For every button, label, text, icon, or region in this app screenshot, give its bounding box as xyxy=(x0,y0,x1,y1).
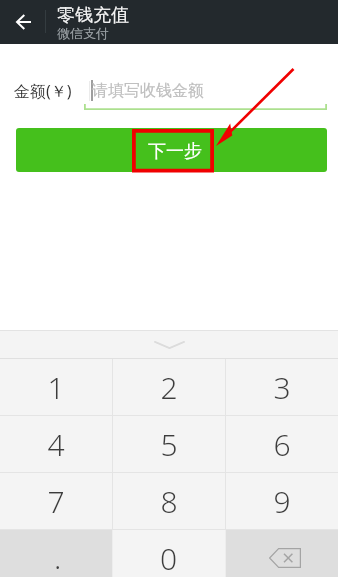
button[interactable]: Backspace xyxy=(226,530,338,577)
button[interactable]: Hide keyboard xyxy=(141,333,197,357)
button[interactable]: 0 xyxy=(113,530,225,577)
button[interactable]: 3 xyxy=(226,359,338,416)
staticText: 微信支付 xyxy=(57,25,109,41)
staticText: 7 xyxy=(47,481,65,522)
button[interactable]: Back xyxy=(0,0,48,44)
button[interactable]: 8 xyxy=(113,473,225,530)
staticText: 5 xyxy=(160,424,178,465)
staticText: . xyxy=(54,537,62,577)
staticText: 6 xyxy=(273,424,291,465)
button[interactable]: 5 xyxy=(113,416,225,473)
button[interactable]: 9 xyxy=(226,473,338,530)
staticText: 4 xyxy=(47,424,65,465)
button[interactable]: 6 xyxy=(226,416,338,473)
staticText: 0 xyxy=(160,538,178,577)
staticText: 金额(￥) xyxy=(14,80,72,102)
button[interactable]: 2 xyxy=(113,359,225,416)
staticText: 请填写收钱金额 xyxy=(92,81,204,101)
staticText: 下一步 xyxy=(148,140,202,163)
button[interactable]: 7 xyxy=(0,473,112,530)
button[interactable]: 下一步 xyxy=(16,128,327,172)
staticText: 零钱充值 xyxy=(57,4,129,27)
staticText: 3 xyxy=(273,367,291,408)
staticText: 9 xyxy=(273,481,291,522)
button[interactable]: 4 xyxy=(0,416,112,473)
staticText: 8 xyxy=(160,481,178,522)
staticText: 2 xyxy=(160,367,178,408)
button[interactable]: . xyxy=(0,530,112,577)
button[interactable]: 1 xyxy=(0,359,112,416)
staticText: 1 xyxy=(47,367,65,408)
